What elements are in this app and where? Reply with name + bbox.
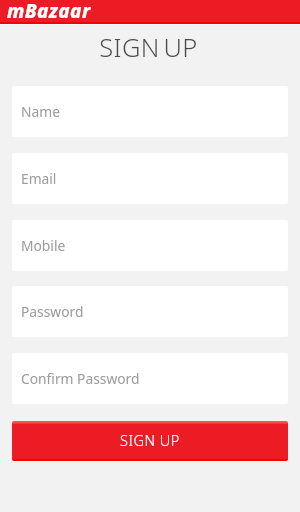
staticText: Email [21, 169, 57, 188]
button[interactable]: mBazaar home [0, 0, 100, 22]
staticText: UP [163, 30, 198, 65]
staticText: SIGN UP [120, 430, 180, 450]
button[interactable]: Password [12, 286, 288, 337]
button[interactable]: Confirm Password [12, 353, 288, 404]
button[interactable]: SIGN UP [12, 421, 288, 461]
button[interactable]: Name [12, 86, 288, 137]
button[interactable]: Email [12, 153, 288, 204]
staticText: SIGN [99, 30, 160, 65]
staticText: Password [21, 302, 84, 321]
staticText: Name [21, 102, 60, 121]
staticText: Confirm Password [21, 369, 140, 388]
staticText: mBazaar [7, 0, 91, 20]
button[interactable]: Mobile [12, 220, 288, 271]
staticText: Mobile [21, 236, 66, 255]
